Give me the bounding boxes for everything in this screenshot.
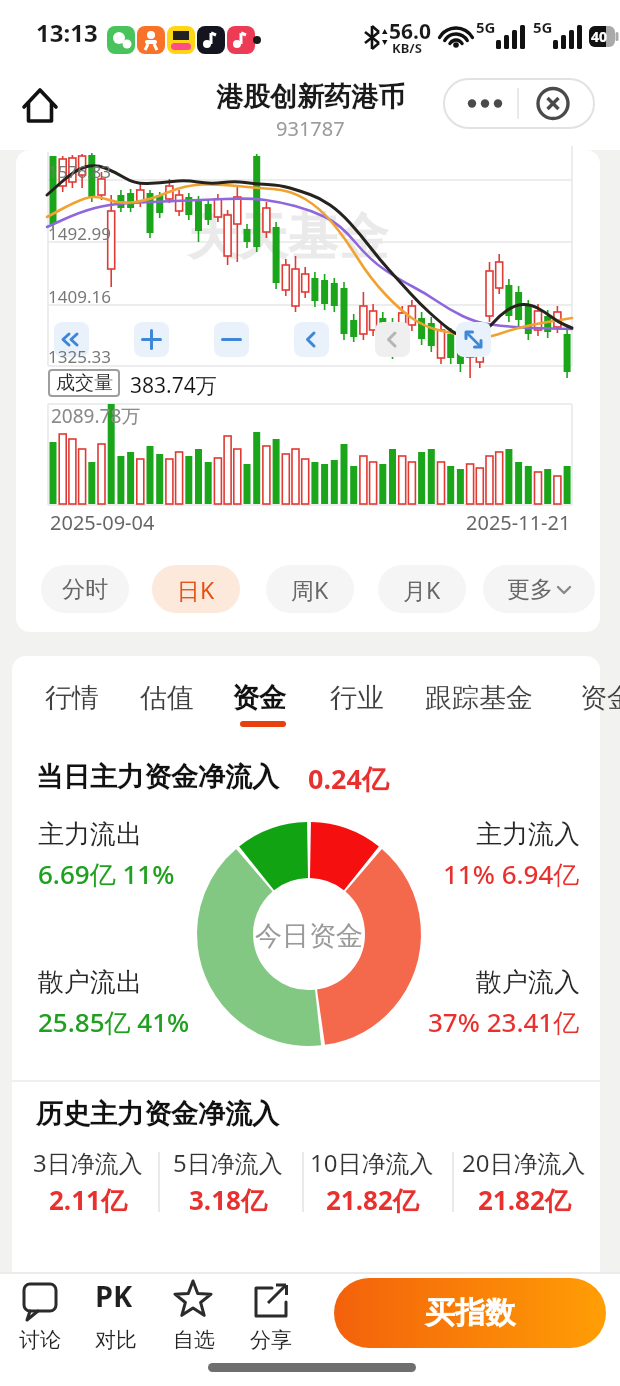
staticText: 6.69亿 11% <box>38 856 175 892</box>
staticText: 21.82亿 <box>478 1182 571 1218</box>
staticText: 今日资金 <box>255 919 363 953</box>
staticText: 0.24亿 <box>308 760 389 797</box>
staticText: 资金流 <box>580 681 620 715</box>
button[interactable]: 跟踪基金 <box>425 676 533 720</box>
staticText: 2025-09-04 <box>50 509 155 536</box>
staticText: 主力流出 <box>38 818 142 851</box>
staticText: 5G <box>476 17 496 37</box>
staticText: 主力流入 <box>476 818 580 851</box>
staticText: 10日净流入 <box>310 1146 434 1179</box>
staticText: 天天基金 <box>188 206 388 269</box>
staticText: 3日净流入 <box>33 1146 143 1179</box>
staticText: 21.82亿 <box>326 1182 419 1218</box>
staticText: 3.18亿 <box>189 1182 267 1218</box>
button[interactable]: 分时 <box>41 565 129 613</box>
button[interactable]: 行情 <box>45 676 99 720</box>
staticText: 讨论 <box>19 1327 61 1353</box>
button[interactable]: 资金 <box>232 676 286 720</box>
button[interactable]: 更多 <box>483 565 595 613</box>
button[interactable] <box>456 322 491 357</box>
staticText: 估值 <box>140 681 194 715</box>
staticText: 买指数 <box>425 1294 515 1332</box>
staticText: 25.85亿 41% <box>38 1004 190 1040</box>
button[interactable]: 讨论 <box>18 1283 62 1353</box>
staticText: 13:13 <box>36 16 98 49</box>
button[interactable] <box>214 322 249 357</box>
staticText: 2.11亿 <box>49 1182 127 1218</box>
staticText: 931787 <box>276 115 345 142</box>
staticText: 更多 <box>507 575 553 604</box>
button[interactable]: 对比 <box>94 1283 138 1353</box>
staticText: 1576.83 <box>48 160 111 183</box>
staticText: 11% 6.94亿 <box>443 856 580 892</box>
staticText: 383.74万 <box>130 371 217 400</box>
button[interactable]: 月K <box>378 565 466 613</box>
button[interactable] <box>134 322 169 357</box>
button[interactable]: 周K <box>266 565 354 613</box>
staticText: 1409.16 <box>48 285 111 308</box>
staticText: 当日主力资金净流入 <box>36 760 279 794</box>
staticText: 1492.99 <box>48 222 111 245</box>
staticText: 20日净流入 <box>462 1146 586 1179</box>
staticText: 跟踪基金 <box>425 681 533 715</box>
staticText: 散户流入 <box>476 966 580 999</box>
staticText: 历史主力资金净流入 <box>36 1097 279 1131</box>
staticText: 成交量 <box>56 371 113 395</box>
staticText: 资金 <box>232 681 286 715</box>
staticText: 1325.33 <box>48 345 111 368</box>
staticText: KB/S <box>392 39 422 57</box>
staticText: 56.0 <box>389 17 431 46</box>
staticText: 港股创新药港币 <box>216 80 405 114</box>
button[interactable] <box>443 78 595 129</box>
button[interactable]: 买指数 <box>334 1278 606 1348</box>
button[interactable]: 估值 <box>140 676 194 720</box>
staticText: 2089.78万 <box>51 403 141 429</box>
staticText: 行业 <box>330 681 384 715</box>
staticText: 自选 <box>173 1327 215 1353</box>
staticText: 分享 <box>250 1327 292 1353</box>
staticText: 分时 <box>62 575 108 604</box>
button[interactable] <box>294 322 329 357</box>
staticText: 散户流出 <box>38 966 142 999</box>
staticText: 5日净流入 <box>173 1146 283 1179</box>
button[interactable]: 行业 <box>330 676 384 720</box>
staticText: 月K <box>403 574 441 605</box>
staticText: 周K <box>291 574 329 605</box>
button[interactable] <box>375 322 410 357</box>
staticText: 40 <box>591 27 608 46</box>
staticText: 行情 <box>45 681 99 715</box>
button[interactable]: 资金流 <box>580 676 620 720</box>
staticText: PK <box>95 1276 133 1315</box>
button[interactable]: 日K <box>152 565 240 613</box>
button[interactable] <box>54 322 89 357</box>
staticText: 37% 23.41亿 <box>428 1004 580 1040</box>
staticText: 对比 <box>95 1327 137 1353</box>
button[interactable]: 分享 <box>249 1283 293 1353</box>
button[interactable] <box>20 84 64 128</box>
button[interactable]: 自选 <box>172 1283 216 1353</box>
staticText: 5G <box>533 17 553 37</box>
staticText: 日K <box>177 574 215 605</box>
staticText: 2025-11-21 <box>466 509 571 536</box>
